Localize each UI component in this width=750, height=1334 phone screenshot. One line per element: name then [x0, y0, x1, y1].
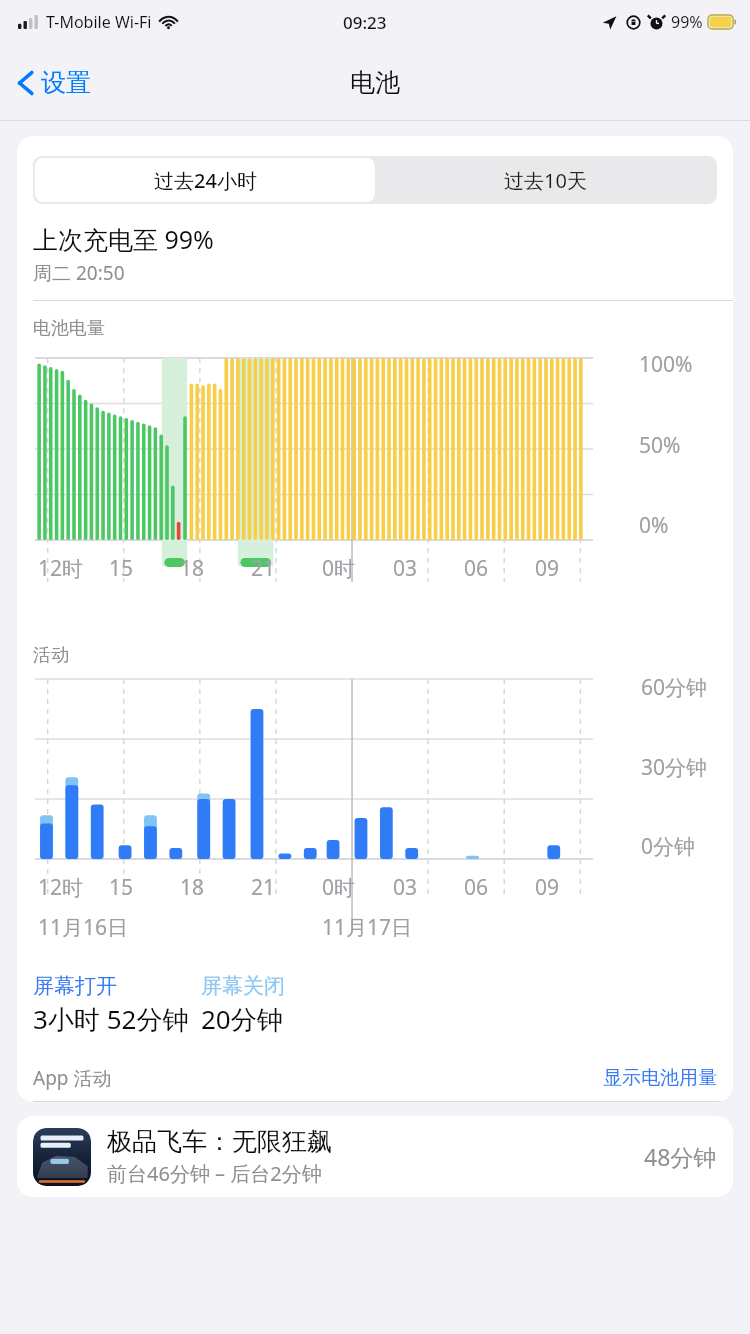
button[interactable]: 过去24小时 [35, 158, 375, 202]
staticText: 18 [180, 554, 205, 583]
button[interactable]: 设置 [8, 59, 101, 106]
staticText: 09 [535, 873, 560, 902]
staticText: 12时 [38, 554, 84, 583]
staticText: 屏幕关闭 [201, 973, 285, 999]
staticText: 前台46分钟 – 后台2分钟 [107, 1160, 322, 1187]
staticText: 12时 [38, 873, 84, 902]
staticText: 周二 20:50 [33, 260, 125, 286]
staticText: 屏幕打开 [33, 973, 117, 999]
staticText: 99% [671, 11, 703, 33]
staticText: 活动 [33, 644, 69, 667]
button[interactable]: 极品飞车：无限狂飙 [17, 1116, 733, 1197]
staticText: 11月17日 [322, 913, 413, 942]
staticText: 电池电量 [33, 317, 105, 340]
staticText: 06 [464, 554, 489, 583]
staticText: 21 [251, 873, 276, 902]
staticText: 0时 [322, 873, 356, 902]
staticText: 15 [109, 554, 134, 583]
staticText: 设置 [41, 67, 91, 98]
staticText: 18 [180, 873, 205, 902]
staticText: 0时 [322, 554, 356, 583]
staticText: 显示电池用量 [603, 1066, 717, 1090]
staticText: 09 [535, 554, 560, 583]
staticText: 3小时 52分钟 [33, 1001, 189, 1037]
staticText: 03 [393, 554, 418, 583]
staticText: 09:23 [343, 11, 387, 34]
staticText: 11月16日 [38, 913, 129, 942]
staticText: 03 [393, 873, 418, 902]
button[interactable]: 过去10天 [375, 158, 715, 202]
staticText: 50% [639, 431, 681, 460]
staticText: 过去24小时 [154, 167, 257, 194]
staticText: 极品飞车：无限狂飙 [107, 1126, 332, 1157]
staticText: 电池 [350, 67, 400, 98]
staticText: 100% [639, 350, 693, 379]
staticText: 21 [251, 554, 276, 583]
staticText: T-Mobile Wi-Fi [46, 11, 152, 33]
staticText: 0分钟 [641, 832, 696, 861]
staticText: 上次充电至 99% [33, 222, 214, 256]
staticText: 20分钟 [201, 1001, 283, 1037]
staticText: 06 [464, 873, 489, 902]
staticText: 48分钟 [644, 1141, 717, 1172]
staticText: App 活动 [33, 1065, 112, 1091]
staticText: 过去10天 [504, 167, 587, 194]
button[interactable]: 显示电池用量 [603, 1066, 717, 1090]
staticText: 0% [639, 511, 669, 540]
staticText: 15 [109, 873, 134, 902]
staticText: 30分钟 [641, 753, 708, 782]
staticText: 60分钟 [641, 673, 708, 702]
